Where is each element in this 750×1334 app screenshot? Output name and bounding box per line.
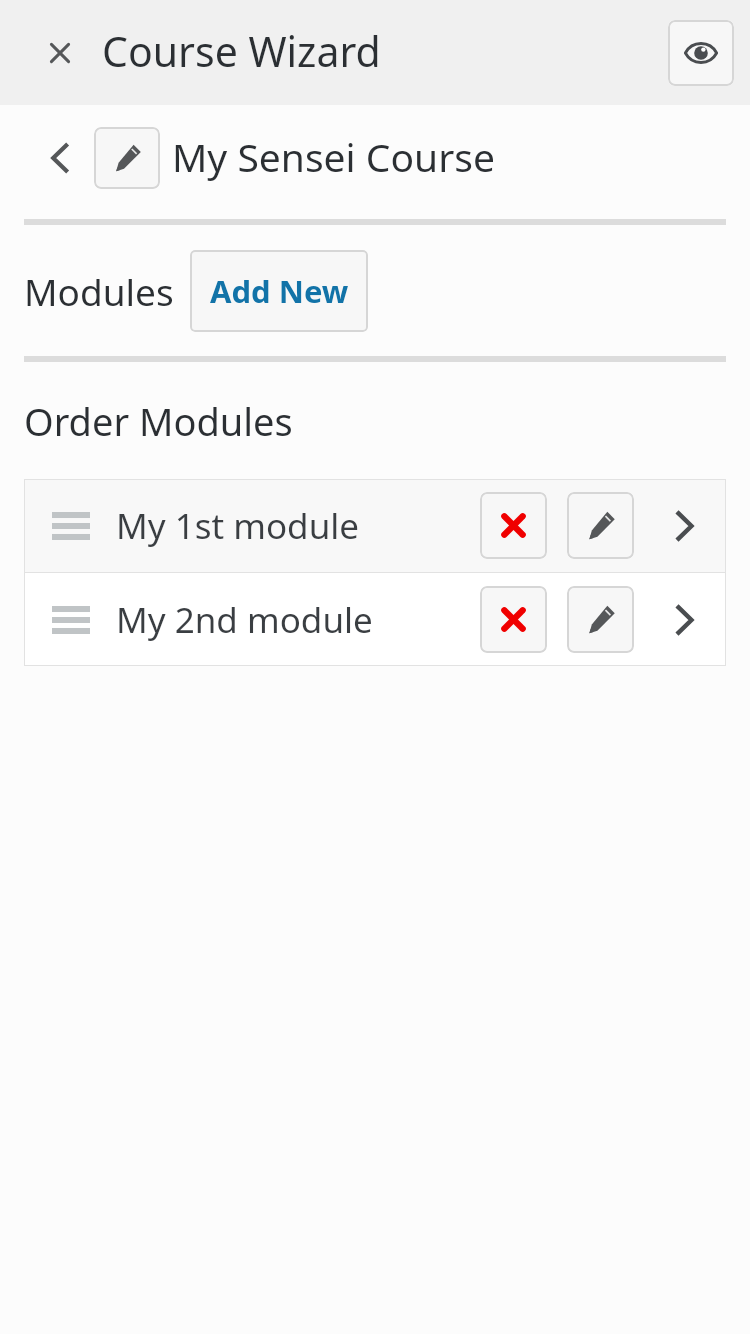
staticText: Add New bbox=[210, 270, 349, 312]
staticText: Modules bbox=[24, 266, 174, 316]
button[interactable]: Open module bbox=[656, 498, 712, 554]
button[interactable]: Edit course title bbox=[94, 127, 160, 189]
button[interactable]: My 2nd module bbox=[24, 573, 726, 666]
button[interactable]: Back bbox=[32, 130, 88, 186]
button[interactable]: Close bbox=[30, 23, 90, 83]
staticText: Course Wizard bbox=[102, 23, 381, 79]
button[interactable]: Delete module bbox=[480, 586, 547, 653]
staticText: My Sensei Course bbox=[172, 130, 495, 183]
button[interactable]: Open module bbox=[656, 592, 712, 648]
button[interactable]: Delete module bbox=[480, 492, 547, 559]
button[interactable]: Preview bbox=[668, 20, 734, 86]
staticText: Order Modules bbox=[24, 395, 293, 447]
button[interactable]: Edit module bbox=[567, 492, 634, 559]
button[interactable]: Edit module bbox=[567, 586, 634, 653]
staticText: My 1st module bbox=[116, 502, 360, 550]
button[interactable]: My 1st module bbox=[24, 479, 726, 572]
staticText: My 2nd module bbox=[116, 596, 373, 644]
button[interactable]: Add New bbox=[190, 250, 368, 332]
